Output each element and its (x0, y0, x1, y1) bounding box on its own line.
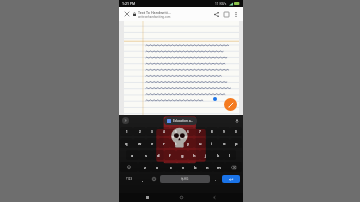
staticText: p (235, 141, 238, 146)
button[interactable]: u (194, 138, 206, 148)
button[interactable]: 0 (230, 127, 242, 136)
button[interactable]: Emoji (148, 174, 159, 184)
staticText: n (206, 165, 209, 170)
button[interactable]: s (139, 150, 152, 160)
button[interactable]: Share (211, 9, 221, 19)
button[interactable]: 5 (170, 127, 182, 136)
button[interactable]: 3 (146, 127, 158, 136)
staticText: m (217, 165, 221, 170)
button[interactable]: z (138, 162, 151, 172)
staticText: 2 (139, 130, 141, 134)
button[interactable]: Education a... (164, 117, 197, 125)
button[interactable]: g (176, 150, 188, 160)
staticText: j (205, 153, 207, 158)
staticText: q (125, 141, 128, 146)
staticText: ?123 (126, 177, 133, 181)
staticText: h (193, 153, 196, 158)
button[interactable]: Enter (222, 175, 240, 183)
button[interactable]: y (182, 138, 194, 148)
button[interactable]: m (213, 162, 225, 172)
staticText: 0 (235, 130, 237, 134)
button[interactable]: f (164, 150, 176, 160)
staticText: r (163, 141, 165, 146)
button[interactable]: 9 (218, 127, 230, 136)
button[interactable]: 8 (206, 127, 218, 136)
staticText: z (144, 165, 146, 170)
button[interactable]: Space (160, 175, 210, 183)
button[interactable]: n (201, 162, 213, 172)
button[interactable]: 6 (182, 127, 194, 136)
button[interactable]: Tabs (221, 9, 231, 19)
staticText: g (181, 153, 184, 158)
staticText: b (194, 165, 197, 170)
button[interactable]: j (200, 150, 212, 160)
button[interactable]: d (152, 150, 164, 160)
staticText: 11 KB/s (215, 2, 227, 6)
button[interactable]: More options (231, 10, 240, 19)
button[interactable]: h (188, 150, 200, 160)
staticText: w (138, 141, 142, 146)
button[interactable]: 7 (194, 127, 206, 136)
button[interactable]: Expand toolbar (122, 117, 129, 124)
button[interactable]: b (189, 162, 201, 172)
staticText: x (156, 165, 159, 170)
button[interactable]: , (138, 174, 148, 184)
staticText: 1:21 PM (122, 1, 136, 6)
staticText: 4 (163, 130, 165, 134)
button[interactable]: i (206, 138, 218, 148)
button[interactable]: . (211, 174, 221, 184)
button[interactable]: x (151, 162, 164, 172)
staticText: . (215, 177, 217, 182)
button[interactable]: e (146, 138, 158, 148)
staticText: d (157, 153, 160, 158)
staticText: t (175, 141, 177, 146)
button[interactable]: 2 (133, 127, 146, 136)
staticText: v (182, 165, 185, 170)
staticText: i (211, 141, 213, 146)
button[interactable]: o (218, 138, 230, 148)
button[interactable]: Recent apps (143, 193, 152, 202)
staticText: Education a... (173, 119, 194, 123)
staticText: 1 (126, 130, 128, 134)
staticText: k (217, 153, 220, 158)
button[interactable]: v (177, 162, 189, 172)
button[interactable]: q (120, 138, 133, 148)
button[interactable]: a (126, 150, 139, 160)
button[interactable]: Shift (120, 162, 138, 172)
staticText: l (229, 153, 231, 158)
staticText: u (199, 141, 202, 146)
staticText: 3 (151, 130, 153, 134)
button[interactable]: w (133, 138, 146, 148)
staticText: 6 (187, 130, 189, 134)
staticText: 9 (223, 130, 225, 134)
button[interactable]: Back (210, 193, 219, 202)
button[interactable]: c (164, 162, 177, 172)
button[interactable]: 4 (158, 127, 170, 136)
staticText: हि-HG (181, 177, 189, 181)
button[interactable]: Home (177, 193, 186, 202)
staticText: e (151, 141, 154, 146)
button[interactable]: r (158, 138, 170, 148)
button[interactable]: Close (122, 9, 132, 19)
staticText: 7 (199, 130, 201, 134)
button[interactable]: l (224, 150, 236, 160)
staticText: Text To Handwriti... (138, 10, 171, 15)
staticText: , (142, 177, 144, 182)
staticText: y (187, 141, 190, 146)
button[interactable]: Voice input (233, 117, 240, 124)
staticText: s (145, 153, 147, 158)
staticText: 8 (211, 130, 213, 134)
button[interactable]: 1 (120, 127, 133, 136)
button[interactable]: t (170, 138, 182, 148)
staticText: o (223, 141, 226, 146)
button[interactable]: Backspace (225, 162, 242, 172)
button[interactable]: k (212, 150, 224, 160)
button[interactable]: p (230, 138, 242, 148)
staticText: 5 (175, 130, 177, 134)
staticText: writeonhandwriting.com (138, 15, 171, 19)
staticText: a (131, 153, 134, 158)
staticText: f (169, 153, 171, 158)
staticText: c (170, 165, 172, 170)
button[interactable]: Edit (224, 98, 237, 111)
button[interactable]: ?123 (122, 174, 137, 184)
